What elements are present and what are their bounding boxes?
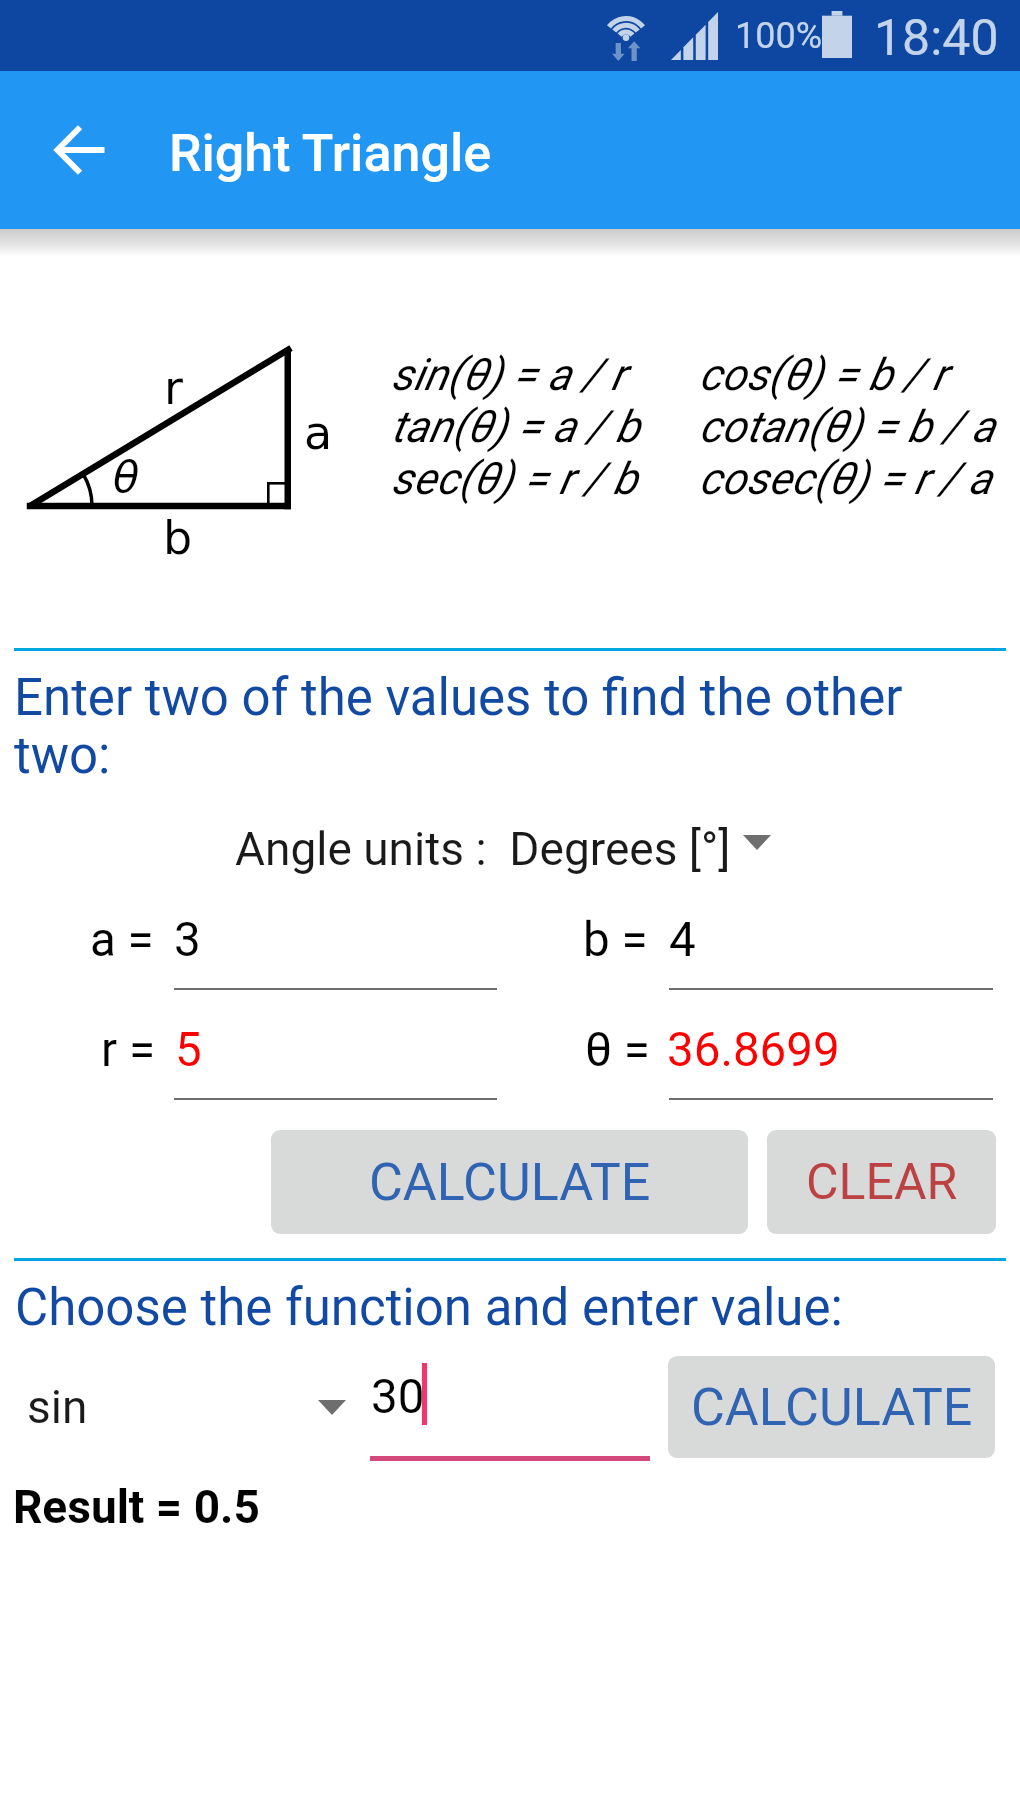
staticText: sin(θ) = a / r bbox=[391, 349, 626, 401]
staticText: 5 bbox=[175, 1022, 202, 1078]
button[interactable]: CALCULATE bbox=[271, 1130, 748, 1234]
staticText: cosec(θ) = r / a bbox=[699, 453, 992, 505]
staticText: 3 bbox=[174, 912, 201, 968]
staticText: r = bbox=[101, 1022, 155, 1078]
staticText: θ bbox=[113, 452, 140, 502]
button[interactable]: CLEAR bbox=[767, 1130, 996, 1234]
staticText: cotan(θ) = b / a bbox=[699, 401, 996, 453]
staticText: Result = 0.5 bbox=[13, 1480, 260, 1534]
staticText: a bbox=[304, 406, 333, 460]
staticText: Right Triangle bbox=[169, 123, 492, 184]
staticText: θ = bbox=[585, 1022, 650, 1078]
button[interactable]: Back bbox=[40, 110, 120, 190]
staticText: 100% bbox=[735, 15, 823, 57]
staticText: 4 bbox=[669, 912, 696, 968]
staticText: b bbox=[163, 511, 193, 565]
button[interactable]: Angle units bbox=[735, 818, 779, 866]
staticText: tan(θ) = a / b bbox=[391, 401, 640, 453]
staticText: sin bbox=[27, 1380, 88, 1434]
staticText: 18:40 bbox=[874, 9, 999, 68]
staticText: 30 bbox=[371, 1369, 425, 1425]
button[interactable]: sin bbox=[14, 1356, 356, 1458]
staticText: CLEAR bbox=[806, 1153, 958, 1212]
staticText: 36.8699 bbox=[667, 1022, 840, 1078]
staticText: Angle units : Degrees [°] bbox=[235, 822, 731, 876]
staticText: CALCULATE bbox=[369, 1152, 651, 1213]
staticText: b = bbox=[583, 912, 648, 968]
staticText: cos(θ) = b / r bbox=[699, 349, 947, 401]
staticText: Choose the function and enter value: bbox=[15, 1278, 843, 1338]
button[interactable]: CALCULATE bbox=[668, 1356, 995, 1458]
staticText: sec(θ) = r / b bbox=[391, 453, 638, 505]
staticText: a = bbox=[90, 912, 154, 968]
staticText: CALCULATE bbox=[691, 1377, 973, 1438]
staticText: Enter two of the values to find the othe… bbox=[14, 668, 924, 785]
staticText: r bbox=[164, 361, 183, 415]
